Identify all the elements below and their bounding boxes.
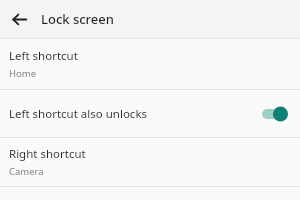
staticText: Camera (9, 165, 44, 178)
button[interactable]: Back (6, 6, 32, 32)
button[interactable]: Left shortcut also unlocks toggle (262, 106, 288, 122)
button[interactable]: Left shortcut also unlocks (0, 90, 300, 137)
staticText: Home (9, 67, 37, 80)
button[interactable]: Left shortcut (0, 39, 300, 89)
button[interactable]: Right shortcut (0, 138, 300, 186)
staticText: Right shortcut (9, 146, 86, 162)
staticText: Lock screen (41, 10, 114, 28)
staticText: Left shortcut (9, 48, 78, 64)
staticText: Left shortcut also unlocks (9, 106, 262, 122)
